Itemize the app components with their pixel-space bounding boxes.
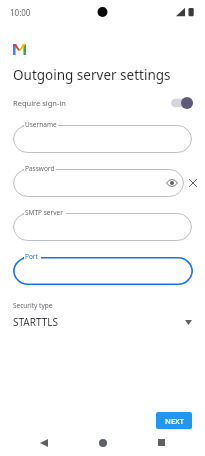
button[interactable]: Require sign-in toggle bbox=[171, 97, 193, 109]
button[interactable]: Port bbox=[13, 252, 193, 285]
button[interactable]: Security type bbox=[0, 299, 205, 333]
staticText: Security type bbox=[13, 301, 53, 310]
button[interactable]: SMTP server bbox=[13, 208, 192, 241]
staticText: Password bbox=[25, 164, 55, 173]
button[interactable]: Clear password bbox=[186, 176, 200, 190]
staticText: Username bbox=[25, 120, 57, 129]
button[interactable]: Show password bbox=[166, 177, 178, 189]
button[interactable]: Recent apps bbox=[146, 429, 176, 456]
staticText: Outgoing server settings bbox=[13, 66, 171, 84]
staticText: Require sign-in bbox=[13, 98, 66, 108]
button[interactable]: Username bbox=[13, 120, 192, 153]
staticText: NEXT bbox=[165, 416, 184, 426]
staticText: 10:00 bbox=[10, 7, 31, 18]
staticText: STARTTLS bbox=[13, 315, 59, 329]
staticText: Port bbox=[25, 252, 38, 261]
button[interactable]: Require sign-in bbox=[0, 92, 205, 114]
button[interactable]: Back bbox=[29, 429, 59, 456]
button[interactable]: Password bbox=[13, 164, 184, 197]
button[interactable]: NEXT bbox=[156, 412, 192, 429]
staticText: SMTP server bbox=[25, 208, 63, 217]
button[interactable]: Home bbox=[88, 429, 118, 456]
